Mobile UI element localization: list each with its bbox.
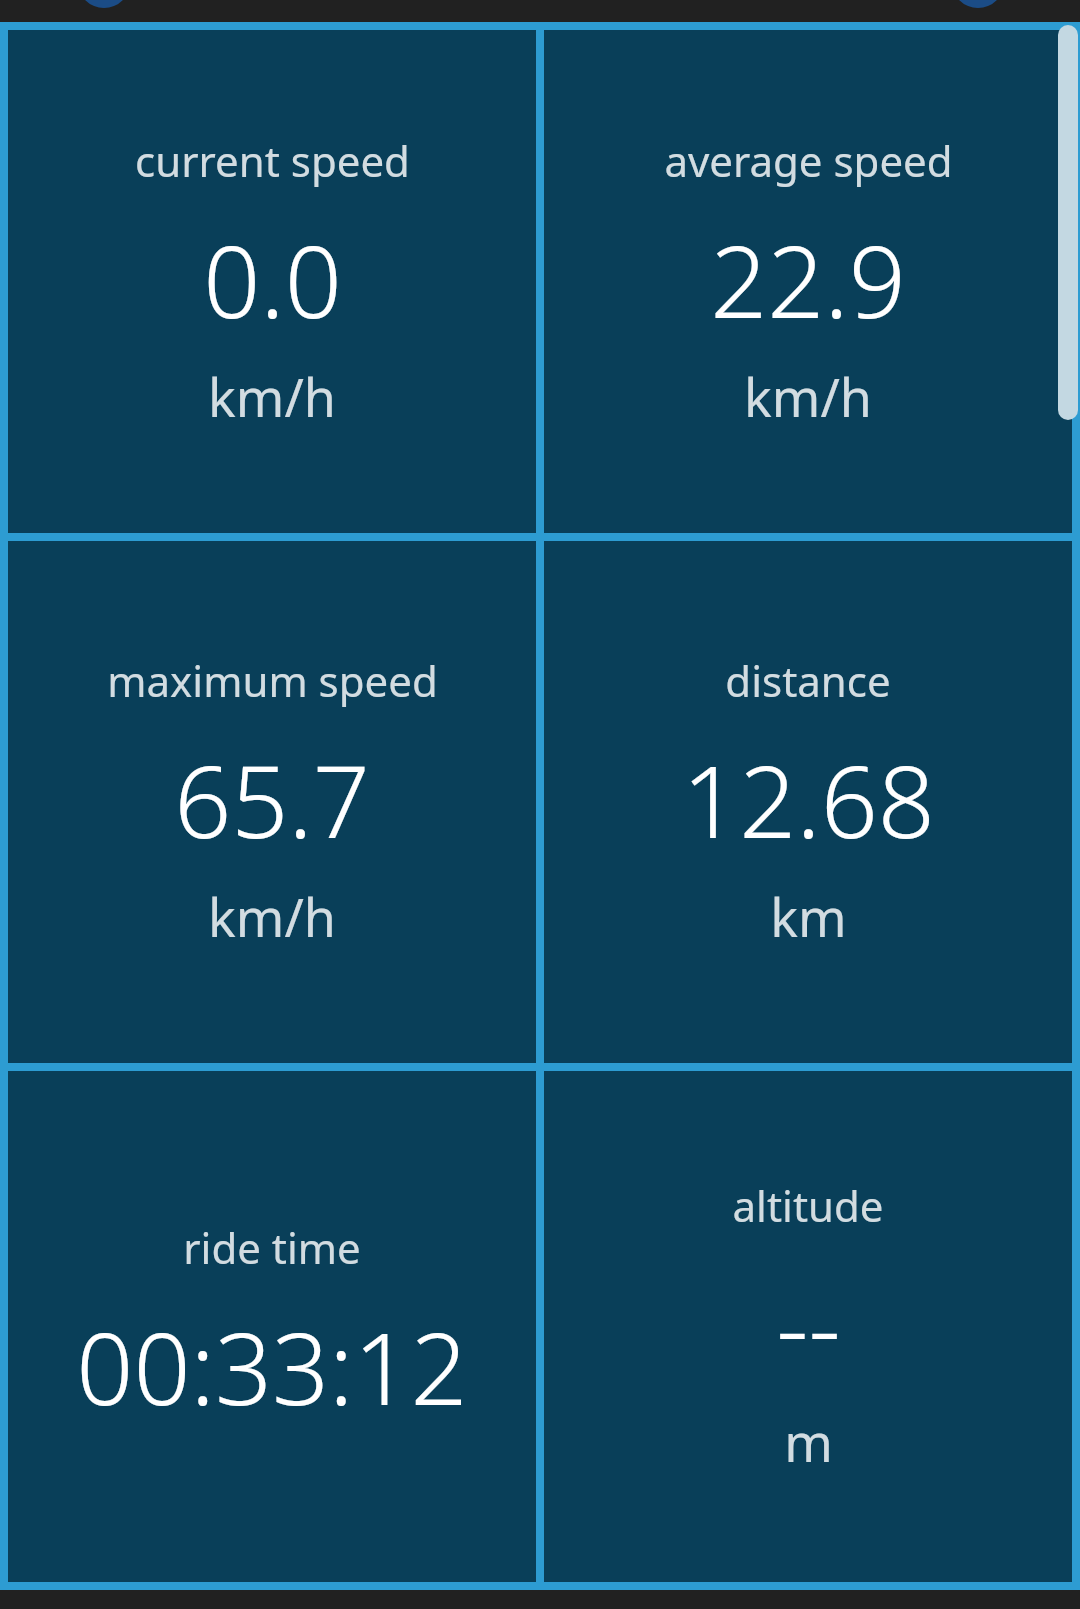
button[interactable]: distance [544,541,1072,1063]
button[interactable]: altitude [544,1071,1072,1582]
staticText: 0.0 [203,211,342,347]
staticText: -- [776,1256,841,1392]
staticText: maximum speed [107,652,438,709]
staticText: km/h [744,361,872,432]
staticText: current speed [135,132,410,189]
staticText: km/h [208,881,336,952]
button[interactable]: current speed [8,30,536,533]
staticText: altitude [732,1177,884,1234]
staticText: m [784,1406,833,1477]
staticText: ride time [183,1219,361,1276]
staticText: average speed [664,132,953,189]
button[interactable]: average speed [544,30,1072,533]
staticText: 22.9 [710,211,906,347]
staticText: distance [725,652,891,709]
button[interactable]: ride time [8,1071,536,1582]
button[interactable]: maximum speed [8,541,536,1063]
staticText: 12.68 [682,731,935,867]
other: Scroll position [1058,25,1078,420]
staticText: 00:33:12 [76,1298,468,1434]
staticText: km [770,881,847,952]
staticText: 65.7 [174,731,370,867]
staticText: km/h [208,361,336,432]
